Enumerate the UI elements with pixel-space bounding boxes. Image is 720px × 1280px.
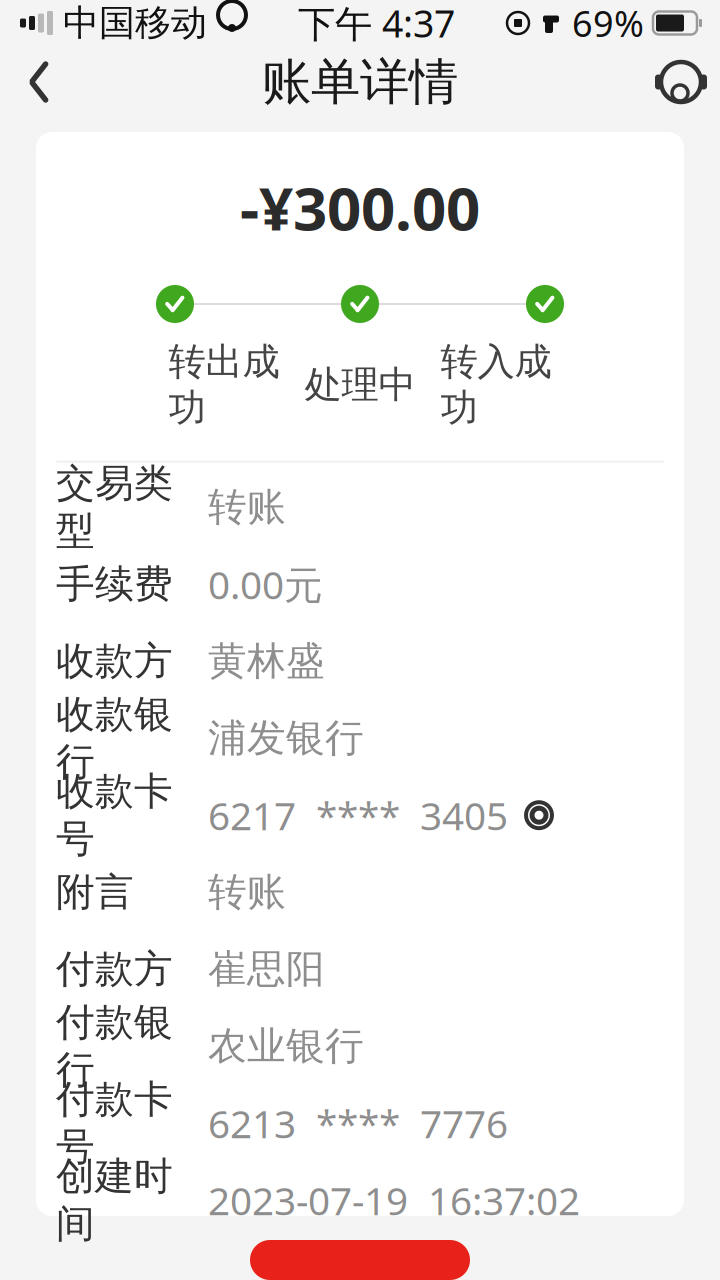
staticText: -¥300.00 — [240, 167, 480, 247]
staticText: 收款方 — [56, 637, 173, 685]
staticText: 转账 — [208, 483, 286, 531]
staticText: 6213 **** 7776 — [208, 1097, 508, 1149]
staticText: 收款卡号 — [56, 768, 173, 863]
staticText: 账单详情 — [262, 52, 458, 112]
staticText: 转账 — [208, 868, 286, 916]
staticText: 附言 — [56, 868, 134, 916]
staticText: 崔思阳 — [208, 945, 325, 993]
staticText: 付款方 — [56, 945, 173, 993]
staticText: 付款卡号 — [56, 1076, 173, 1171]
staticText: 农业银行 — [208, 1022, 364, 1070]
staticText: 转出成功 — [168, 339, 279, 431]
staticText: 浦发银行 — [208, 714, 364, 762]
staticText: 下午 4:37 — [298, 0, 455, 48]
staticText: 手续费 — [56, 560, 173, 608]
staticText: 收款银行 — [56, 691, 173, 786]
staticText: 处理中 — [304, 362, 415, 408]
button[interactable]: 客服 — [642, 47, 720, 117]
staticText: 付款银行 — [56, 999, 173, 1094]
staticText: 0.00元 — [208, 558, 323, 610]
staticText: 转入成功 — [440, 339, 551, 431]
staticText: 2023-07-19 16:37:02 — [208, 1174, 580, 1226]
staticText: 创建时间 — [56, 1153, 173, 1248]
staticText: 黄林盛 — [208, 637, 325, 685]
staticText: 6217 **** 3405 — [208, 789, 508, 841]
staticText: 交易类型 — [56, 460, 173, 555]
button[interactable]: 显示完整卡号 — [508, 785, 570, 845]
staticText: 中国移动 — [63, 1, 207, 45]
button[interactable]: 继续 — [250, 1240, 470, 1280]
button[interactable]: 返回 — [0, 47, 78, 117]
staticText: 69% — [572, 0, 644, 47]
